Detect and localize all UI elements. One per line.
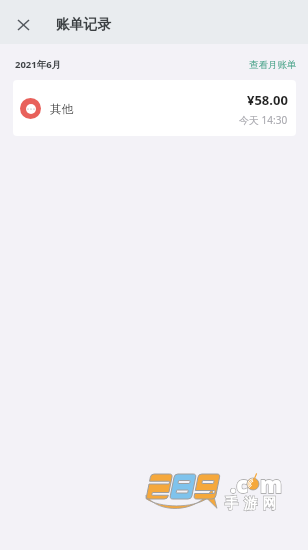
staticText: ¥58.00 <box>247 91 288 109</box>
staticText: .c <box>230 469 249 499</box>
staticText: .c <box>230 469 249 499</box>
button[interactable]: 查看月账单 <box>249 59 308 71</box>
button[interactable]: Close <box>0 0 44 44</box>
staticText: 查看月账单 <box>249 59 297 71</box>
staticText: 账单记录 <box>56 16 112 33</box>
staticText: 手游网 <box>222 495 279 512</box>
staticText: 2021年6月 <box>15 58 62 71</box>
button[interactable]: 其他 <box>13 80 296 136</box>
staticText: m <box>260 469 283 499</box>
staticText: 今天 14:30 <box>239 113 288 127</box>
staticText: m <box>260 469 283 499</box>
staticText: 其他 <box>50 102 73 116</box>
staticText: 手游网 <box>222 495 279 512</box>
